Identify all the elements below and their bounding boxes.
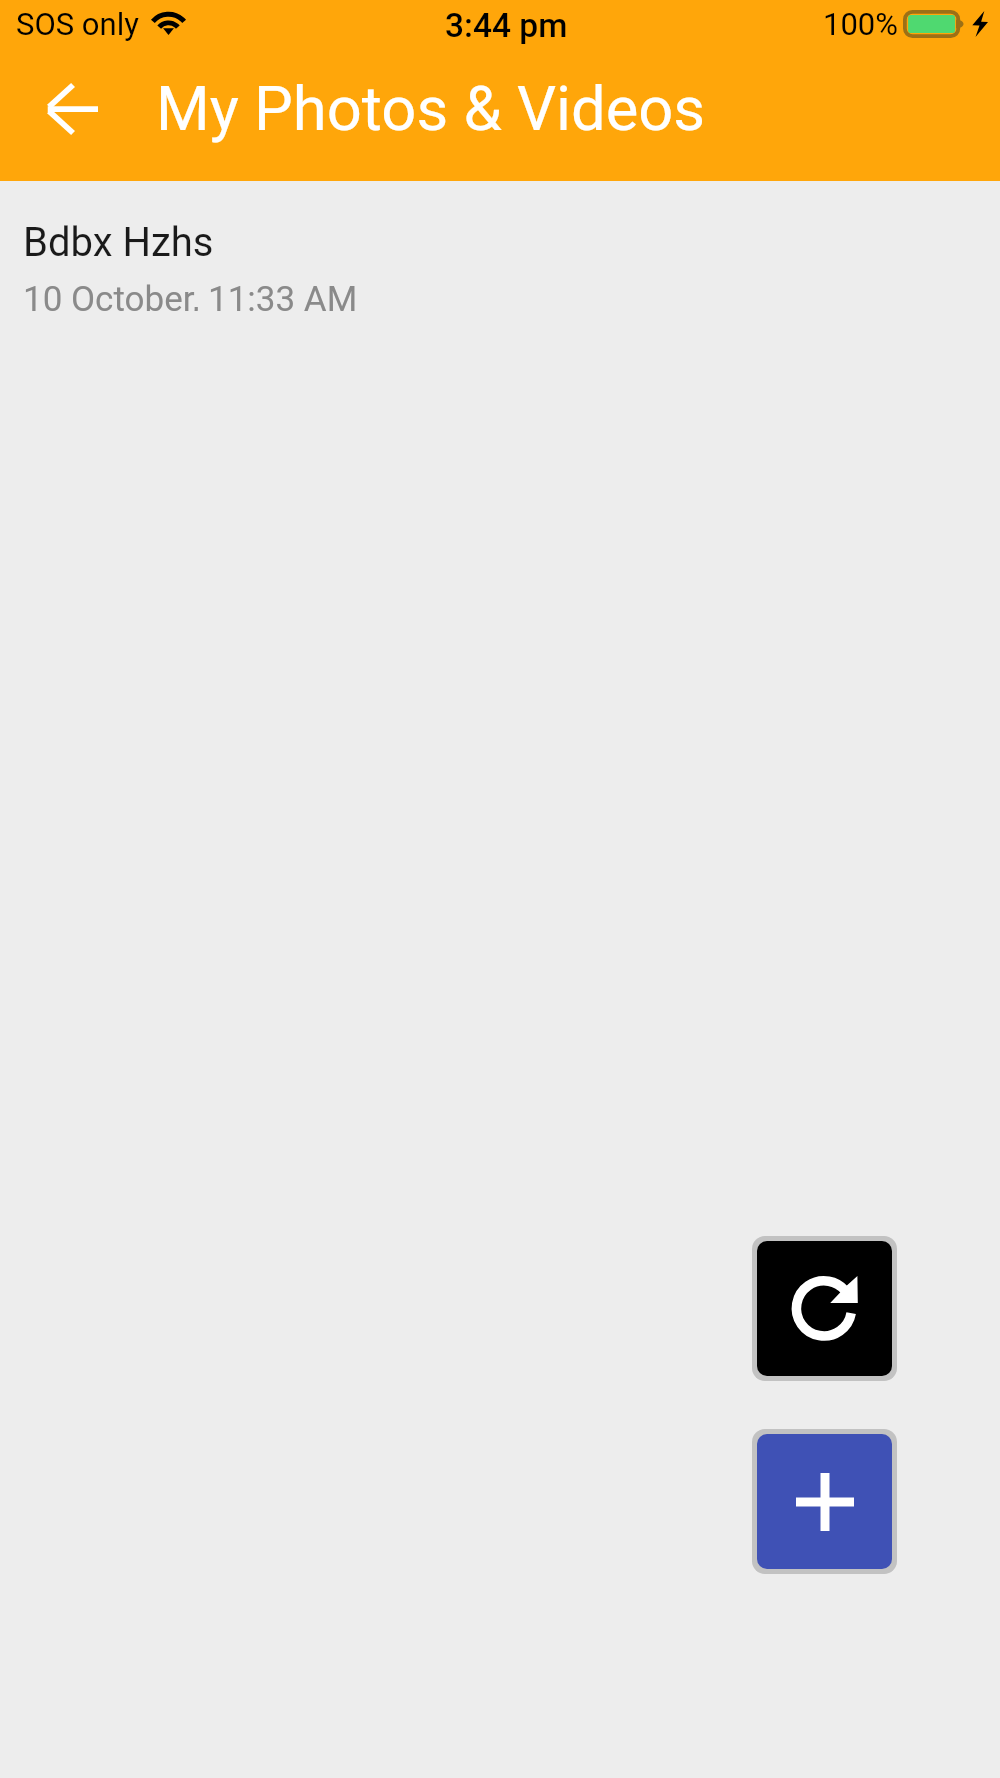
button[interactable]: Bdbx Hzhs bbox=[0, 181, 1000, 333]
staticText: 3:44 pm bbox=[445, 6, 568, 45]
staticText: Bdbx Hzhs bbox=[23, 219, 214, 266]
button[interactable]: Refresh bbox=[757, 1241, 892, 1376]
staticText: 100% bbox=[823, 6, 898, 42]
button[interactable]: Add bbox=[757, 1434, 892, 1569]
staticText: My Photos & Videos bbox=[156, 73, 706, 145]
staticText: SOS only bbox=[16, 6, 139, 42]
staticText: 10 October, 11:33 AM bbox=[23, 279, 358, 311]
button[interactable]: Back bbox=[25, 62, 119, 156]
